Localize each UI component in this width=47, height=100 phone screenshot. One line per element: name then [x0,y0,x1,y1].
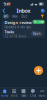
staticText: Tasks [4,29,14,34]
staticText: Inbox [16,7,30,14]
button[interactable]: Compose [34,66,43,75]
button[interactable]: New [11,14,19,19]
button[interactable]: All [2,14,10,19]
staticText: All [4,15,8,18]
button[interactable]: Back [0,8,7,14]
staticText: Feed [11,94,18,97]
staticText: Open [33,32,41,35]
button[interactable]: More [38,89,47,97]
staticText: New [12,15,17,18]
staticText: On track [34,20,44,24]
staticText: Updated 4 min ago [4,25,31,29]
button[interactable]: Feed [9,89,19,97]
button[interactable]: Due [20,14,29,19]
staticText: 12 of 18 done [4,35,26,38]
staticText: Tasks [21,94,26,97]
button[interactable]: Filter [40,14,44,19]
button[interactable]: Home [0,89,9,97]
staticText: Home [1,94,9,97]
staticText: Due [21,15,27,18]
staticText: More [39,94,46,97]
button[interactable]: Tasks [19,89,28,97]
staticText: Design review [4,20,31,25]
button[interactable]: Chat [28,89,38,97]
button[interactable]: Settings [38,8,47,14]
staticText: 9:41 [3,1,10,7]
staticText: Chat [30,94,36,97]
button[interactable]: Open [31,31,43,36]
